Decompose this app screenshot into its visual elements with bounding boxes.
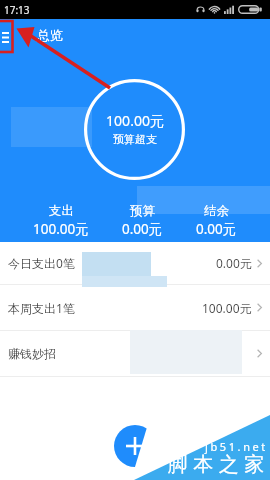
staticText: 100.00元 <box>202 300 252 316</box>
staticText: 0.00元 <box>216 255 252 271</box>
staticText: 脚本之家 <box>165 452 267 477</box>
staticText: jb51.net <box>205 439 268 454</box>
staticText: 预算超支 <box>113 132 157 146</box>
staticText: 100.00元 <box>106 111 164 130</box>
staticText: 17:13 <box>4 3 30 17</box>
button[interactable]: 本周支出1笔 <box>0 285 270 330</box>
staticText: 100.00元 <box>33 220 89 238</box>
button[interactable]: Add record <box>114 425 156 467</box>
staticText: 今日支出0笔 <box>8 255 75 271</box>
staticText: 0.00元 <box>196 220 237 238</box>
staticText: 本周支出1笔 <box>8 300 75 316</box>
staticText: 预算 <box>130 203 155 219</box>
staticText: 0.00元 <box>122 220 163 238</box>
button[interactable]: 赚钱妙招 <box>0 331 270 376</box>
staticText: 结余 <box>204 203 229 219</box>
staticText: 总览 <box>37 27 63 43</box>
staticText: 支出 <box>49 203 74 219</box>
button[interactable]: 今日支出0笔 <box>0 242 270 284</box>
button[interactable]: Menu <box>0 24 11 50</box>
staticText: 赚钱妙招 <box>8 346 56 361</box>
